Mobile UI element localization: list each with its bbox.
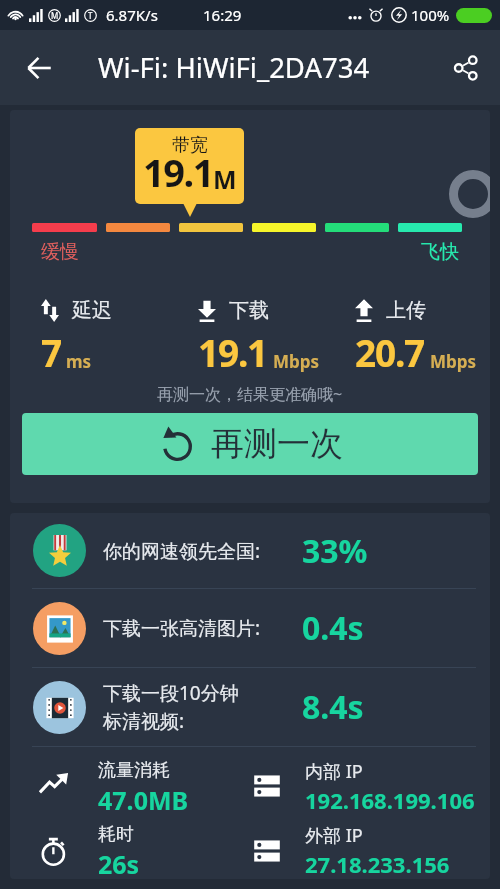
staticText: 带宽 — [172, 134, 208, 157]
staticText: 飞快 — [421, 240, 459, 264]
staticText: 下载一张高清图片: — [103, 615, 261, 641]
button[interactable]: Share — [443, 45, 489, 91]
staticText: 0.4s — [302, 606, 364, 650]
button[interactable]: 耗时 — [10, 823, 240, 879]
button[interactable]: 下载一段10分钟 — [10, 668, 490, 746]
staticText: 6.87K/s — [106, 5, 158, 25]
staticText: 100% — [411, 5, 450, 25]
staticText: 流量消耗 — [98, 759, 170, 782]
button[interactable]: 外部 IP — [240, 823, 490, 879]
staticText: 192.168.199.106 — [305, 785, 475, 813]
staticText: 47.0MB — [98, 783, 189, 813]
staticText: 27.18.233.156 — [305, 849, 450, 879]
staticText: Mbps — [273, 350, 320, 373]
staticText: 26s — [98, 847, 140, 879]
button[interactable]: Back — [16, 45, 62, 91]
staticText: 下载一段10分钟 — [103, 680, 239, 706]
button[interactable]: 流量消耗 — [10, 759, 240, 813]
button[interactable]: 内部 IP — [240, 759, 490, 813]
staticText: 33% — [302, 529, 368, 573]
staticText: 20.7 — [355, 327, 425, 377]
staticText: 再测一次，结果更准确哦~ — [157, 383, 343, 405]
staticText: 内部 IP — [305, 759, 363, 784]
staticText: Wi-Fi: HiWiFi_2DA734 — [98, 49, 370, 86]
staticText: 上传 — [386, 298, 426, 323]
staticText: 外部 IP — [305, 823, 363, 848]
staticText: 8.4s — [302, 685, 364, 729]
button[interactable]: 再测一次 — [22, 413, 478, 475]
staticText: 你的网速领先全国: — [103, 538, 261, 564]
staticText: 再测一次 — [211, 423, 343, 465]
staticText: ms — [66, 350, 92, 373]
staticText: 标清视频: — [103, 708, 185, 734]
staticText: 下载 — [229, 298, 269, 323]
staticText: 耗时 — [98, 823, 134, 846]
button[interactable]: 下载一张高清图片: — [10, 589, 490, 667]
staticText: 16:29 — [203, 5, 242, 25]
staticText: T — [88, 10, 93, 21]
staticText: 7 — [41, 327, 61, 377]
staticText: 19.1 — [198, 327, 268, 377]
staticText: 延迟 — [72, 298, 112, 323]
staticText: 19.1 — [143, 146, 213, 198]
staticText: 缓慢 — [41, 240, 79, 264]
staticText: M — [51, 10, 59, 21]
staticText: M — [213, 162, 237, 196]
button[interactable]: 你的网速领先全国: — [10, 513, 490, 588]
staticText: Mbps — [430, 350, 477, 373]
